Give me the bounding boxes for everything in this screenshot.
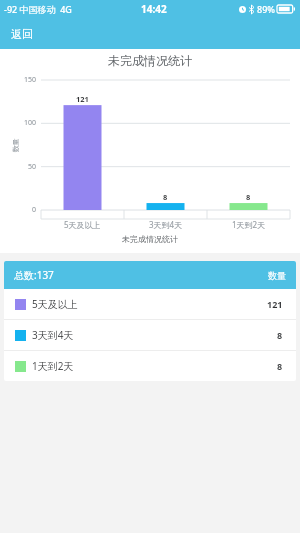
staticText: 5天及以上: [32, 297, 78, 311]
button[interactable]: 3天到4天: [4, 320, 296, 350]
staticText: 未完成情况统计: [0, 234, 300, 244]
staticText: 8: [163, 192, 168, 202]
staticText: 8: [277, 329, 283, 341]
staticText: 14:42: [141, 2, 167, 16]
staticText: 3天到4天: [32, 328, 74, 342]
staticText: 数量: [268, 270, 286, 281]
button[interactable]: 返回: [5, 22, 39, 46]
staticText: 150: [24, 75, 37, 85]
staticText: 121: [267, 298, 283, 310]
other: Battery: [277, 5, 295, 13]
button[interactable]: 5天及以上: [4, 289, 296, 319]
staticText: 总数:137: [14, 268, 54, 282]
button[interactable]: 1天到2天: [4, 351, 296, 381]
staticText: 0: [32, 205, 37, 215]
staticText: -92 中国移动 4G: [4, 3, 72, 15]
staticText: 3天到4天: [149, 219, 183, 230]
staticText: 返回: [11, 27, 33, 41]
staticText: 1天到2天: [232, 219, 266, 230]
other: Bluetooth: [249, 5, 254, 14]
staticText: 数量: [10, 138, 19, 152]
staticText: 1天到2天: [32, 359, 74, 373]
other: Alarm: [239, 6, 246, 13]
staticText: 121: [76, 94, 89, 104]
staticText: 100: [24, 118, 37, 128]
staticText: 5天及以上: [64, 219, 101, 230]
staticText: 8: [246, 192, 251, 202]
staticText: 50: [28, 162, 37, 172]
staticText: 89%: [257, 3, 275, 15]
staticText: 8: [277, 360, 283, 372]
staticText: 未完成情况统计: [0, 53, 300, 68]
